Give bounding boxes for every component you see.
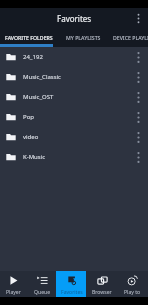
button[interactable]: Options for Music_OST xyxy=(128,87,148,107)
button[interactable]: 24_192 xyxy=(0,47,148,67)
button[interactable]: K-Music xyxy=(0,147,148,167)
button[interactable]: Options for Music_Classic xyxy=(128,67,148,87)
button[interactable]: Pop xyxy=(0,107,148,127)
staticText: Music_OST xyxy=(23,93,128,101)
button[interactable]: video xyxy=(0,127,148,147)
staticText: Player xyxy=(6,289,21,296)
staticText: FAVORITE FOLDERS xyxy=(5,34,53,41)
staticText: K-Music xyxy=(23,153,128,161)
button[interactable]: Options for Pop xyxy=(128,107,148,127)
staticText: DEVICE PLAYLISTS xyxy=(113,34,148,41)
staticText: Music_Classic xyxy=(23,73,128,81)
button[interactable]: Player xyxy=(0,271,29,297)
button[interactable]: Favorites xyxy=(58,271,88,297)
button[interactable]: More options xyxy=(128,8,148,28)
button[interactable]: Options for 24_192 xyxy=(128,47,148,67)
button[interactable]: DEVICE PLAYLISTS xyxy=(113,28,148,47)
staticText: Play to xyxy=(124,289,141,296)
staticText: Browser xyxy=(92,289,112,296)
button[interactable]: MY PLAYLISTS xyxy=(57,28,110,47)
button[interactable]: Options for video xyxy=(128,127,148,147)
staticText: Favorites xyxy=(57,13,92,24)
button[interactable]: FAVORITE FOLDERS xyxy=(0,28,57,47)
staticText: Pop xyxy=(23,113,128,121)
staticText: Queue xyxy=(34,289,51,296)
button[interactable]: Browser xyxy=(88,271,118,297)
staticText: MY PLAYLISTS xyxy=(66,34,101,41)
button[interactable]: Play to xyxy=(118,271,148,297)
staticText: 24_192 xyxy=(23,53,128,61)
button[interactable]: Music_OST xyxy=(0,87,148,107)
button[interactable]: Options for K-Music xyxy=(128,147,148,167)
staticText: Favorites xyxy=(61,289,83,296)
button[interactable]: Music_Classic xyxy=(0,67,148,87)
button[interactable]: Queue xyxy=(29,271,58,297)
staticText: video xyxy=(23,133,128,141)
